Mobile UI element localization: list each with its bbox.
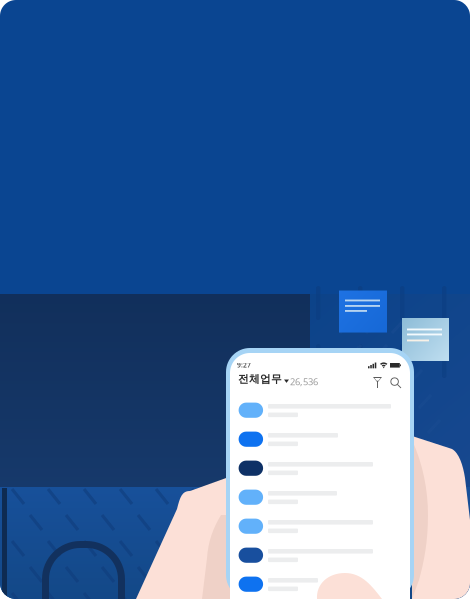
button[interactable] [230,576,410,599]
button[interactable] [230,547,410,576]
staticText: 9:27 [237,360,251,369]
button[interactable] [230,460,410,489]
button[interactable] [230,402,410,431]
staticText: 26,536 [290,375,318,388]
button[interactable] [230,489,410,518]
button[interactable]: Filter [368,372,386,392]
button[interactable] [230,431,410,460]
button[interactable] [230,518,410,547]
staticText: 전체업무 [238,372,282,386]
button[interactable]: Search [385,372,406,393]
